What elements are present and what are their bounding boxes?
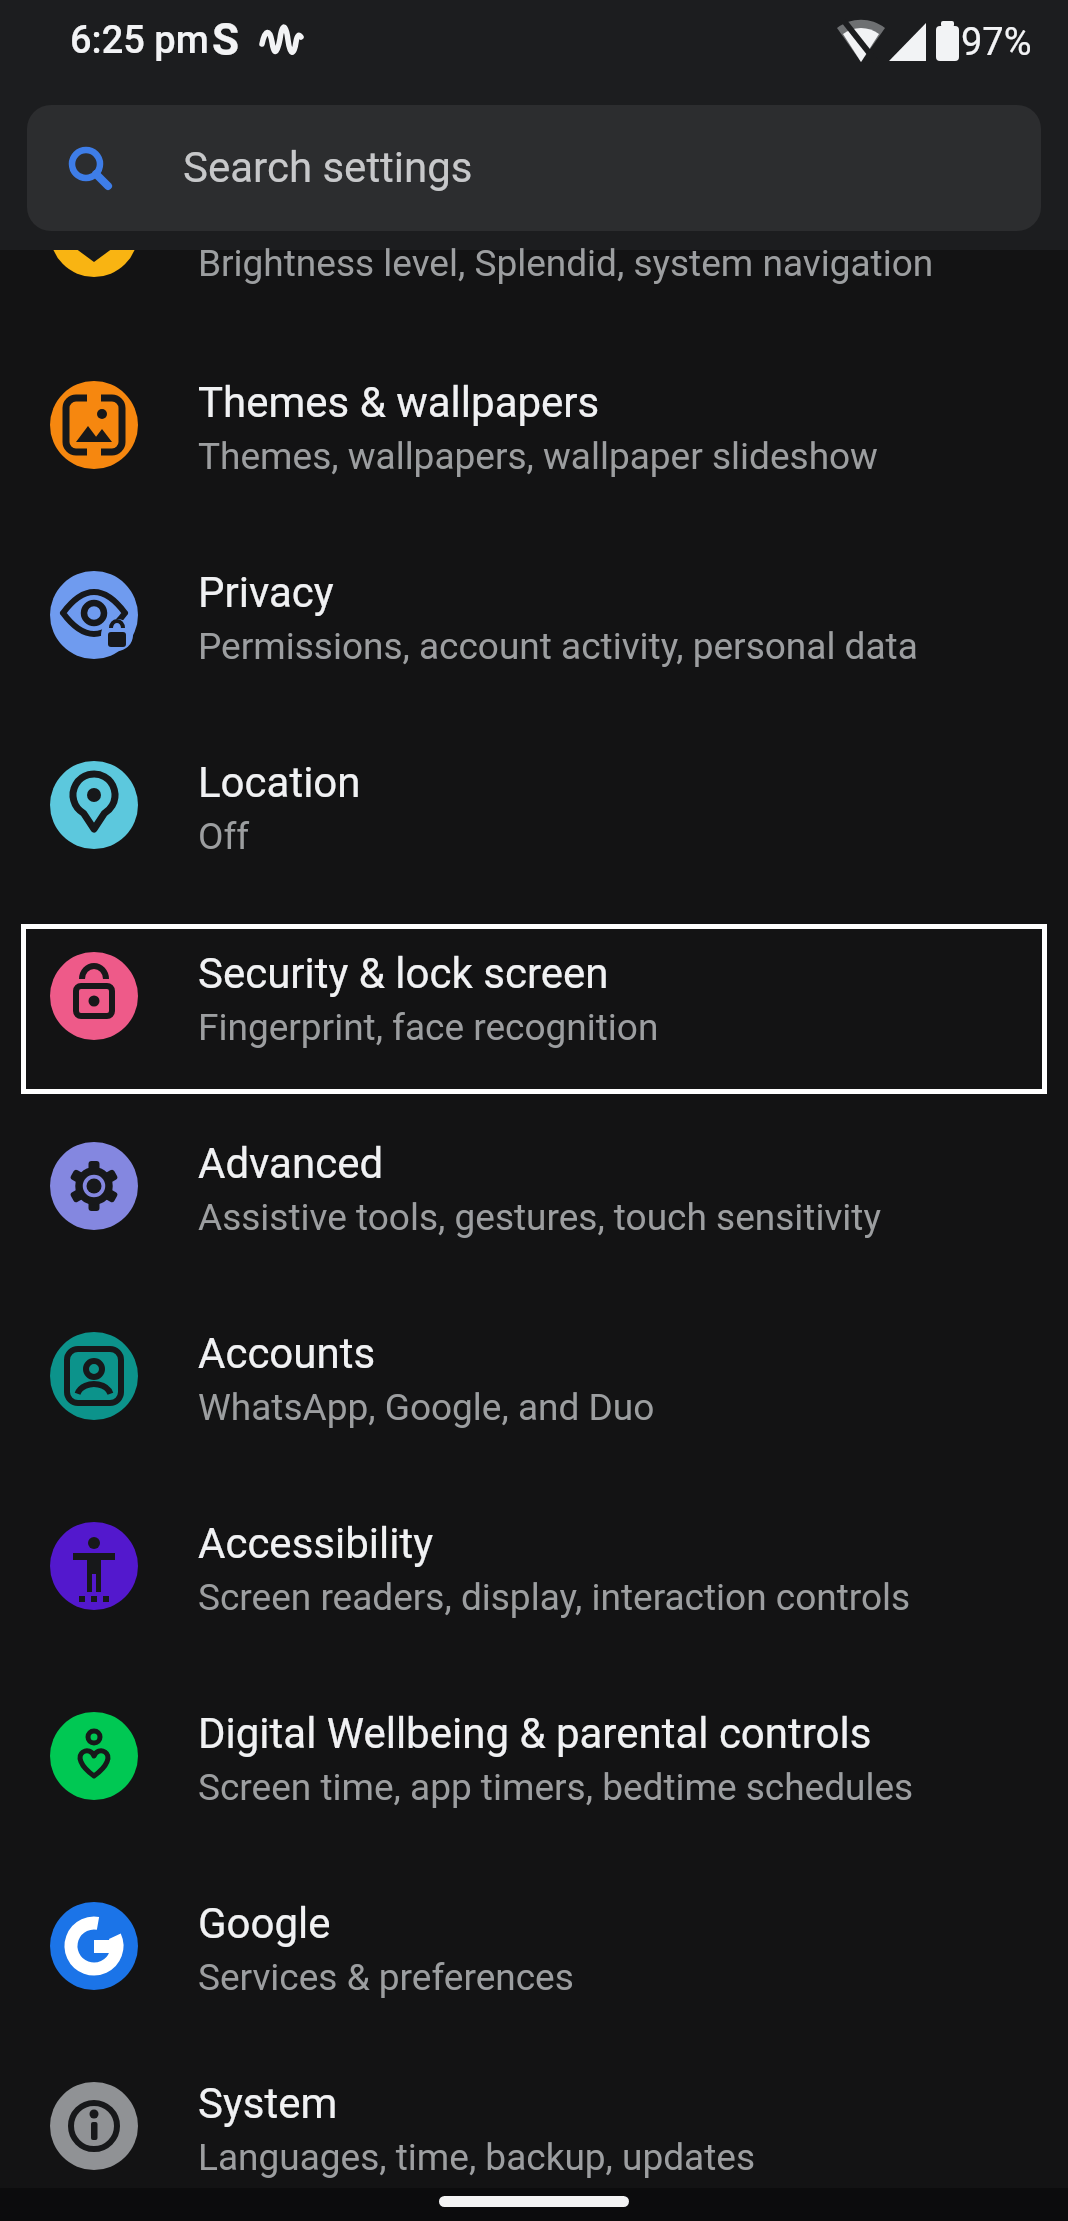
staticText: Advanced xyxy=(198,1139,384,1188)
staticText: 6:25 pm xyxy=(70,18,209,63)
staticText: Themes & wallpapers xyxy=(198,378,600,427)
button[interactable]: Accessibility xyxy=(0,1471,1068,1661)
button[interactable]: Privacy xyxy=(0,520,1068,710)
staticText: Themes, wallpapers, wallpaper slideshow xyxy=(198,435,878,478)
button[interactable]: Digital Wellbeing & parental controls xyxy=(0,1661,1068,1851)
button[interactable]: Search settings xyxy=(27,105,1041,231)
staticText: Services & preferences xyxy=(198,1956,574,1999)
staticText: Privacy xyxy=(198,568,334,617)
staticText: Languages, time, backup, updates xyxy=(198,2136,756,2179)
staticText: Location xyxy=(198,758,361,807)
staticText: Assistive tools, gestures, touch sensiti… xyxy=(198,1196,881,1239)
staticText: WhatsApp, Google, and Duo xyxy=(198,1386,655,1429)
staticText: 97% xyxy=(961,20,1032,65)
button[interactable]: Google xyxy=(0,1851,1068,2041)
staticText: Search settings xyxy=(183,143,473,192)
button[interactable]: System xyxy=(0,2031,1068,2221)
button[interactable]: Themes & wallpapers xyxy=(0,330,1068,520)
staticText: Screen time, app timers, bedtime schedul… xyxy=(198,1766,914,1809)
staticText: Google xyxy=(198,1899,331,1948)
staticText: Digital Wellbeing & parental controls xyxy=(198,1709,872,1758)
staticText: Permissions, account activity, personal … xyxy=(198,625,918,668)
staticText: Screen readers, display, interaction con… xyxy=(198,1576,911,1619)
staticText: Accounts xyxy=(198,1329,376,1378)
staticText: Off xyxy=(198,815,250,858)
button[interactable]: Advanced xyxy=(0,1091,1068,1281)
staticText: Security & lock screen xyxy=(198,949,609,998)
staticText: S xyxy=(212,14,240,66)
staticText: Accessibility xyxy=(198,1519,434,1568)
staticText: System xyxy=(198,2079,338,2128)
button[interactable]: Location xyxy=(0,710,1068,900)
button[interactable] xyxy=(439,2196,629,2207)
staticText: Fingerprint, face recognition xyxy=(198,1006,659,1049)
button[interactable]: Security & lock screen xyxy=(0,901,1068,1091)
staticText: Brightness level, Splendid, system navig… xyxy=(198,242,934,285)
button[interactable]: Accounts xyxy=(0,1281,1068,1471)
